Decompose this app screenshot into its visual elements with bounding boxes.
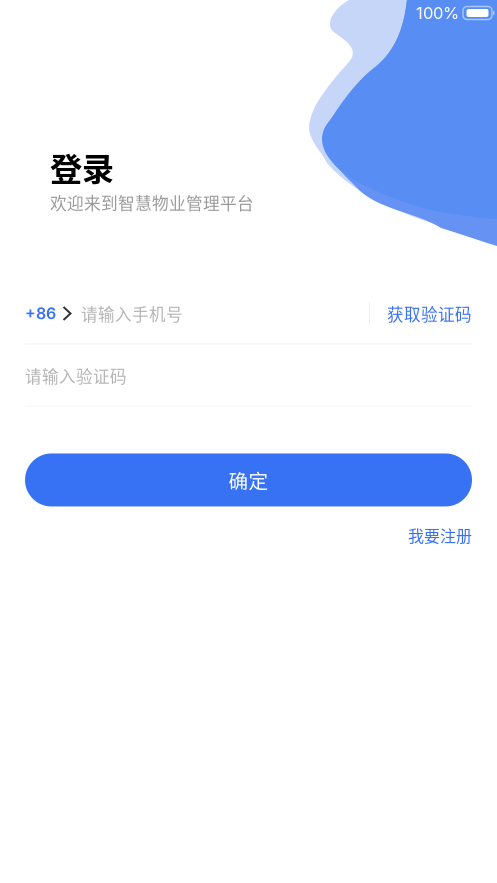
staticText: +86 bbox=[25, 304, 56, 323]
staticText: 获取验证码 bbox=[387, 301, 472, 325]
staticText: 确定 bbox=[228, 466, 268, 494]
button[interactable]: 请输入手机号 bbox=[81, 300, 369, 326]
staticText: 100% bbox=[416, 3, 459, 23]
staticText: 我要注册 bbox=[408, 523, 472, 547]
button[interactable]: 选择国家区号 +86 bbox=[25, 300, 72, 326]
staticText: 登录 bbox=[50, 144, 114, 190]
button[interactable]: 确定 bbox=[25, 453, 472, 506]
staticText: 欢迎来到智慧物业管理平台 bbox=[50, 190, 254, 214]
button[interactable]: 我要注册 bbox=[408, 523, 472, 547]
button[interactable]: 获取验证码 bbox=[387, 300, 472, 326]
staticText: 请输入手机号 bbox=[81, 301, 183, 325]
button[interactable]: 请输入验证码 bbox=[25, 362, 472, 388]
staticText: 请输入验证码 bbox=[25, 363, 127, 387]
